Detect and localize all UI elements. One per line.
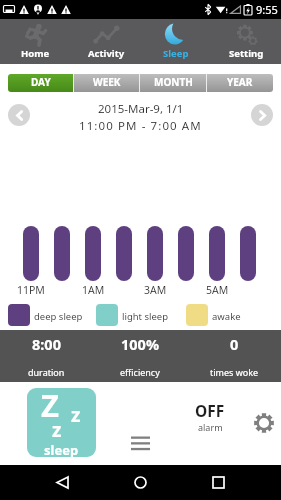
button[interactable]: Previous day <box>8 104 30 126</box>
button[interactable]: Menu <box>131 434 153 450</box>
staticText: YEAR <box>227 75 253 89</box>
staticText: awake <box>212 310 241 323</box>
staticText: 0 <box>230 334 239 354</box>
button[interactable]: Home <box>126 465 154 500</box>
staticText: 5AM <box>206 283 229 297</box>
button[interactable]: Home <box>0 19 71 64</box>
staticText: 1AM <box>82 283 105 297</box>
staticText: z <box>71 402 81 428</box>
button[interactable]: Sleep <box>141 19 211 64</box>
staticText: Setting <box>229 47 264 60</box>
button[interactable]: 0 <box>187 330 281 382</box>
button[interactable]: Recents <box>204 465 232 500</box>
staticText: OFF <box>195 400 225 421</box>
button[interactable]: MONTH <box>140 74 206 92</box>
button[interactable]: DAY <box>8 74 73 92</box>
staticText: z <box>52 417 62 443</box>
button[interactable]: Activity <box>71 19 141 64</box>
button[interactable]: WEEK <box>74 74 139 92</box>
staticText: 3AM <box>144 283 167 297</box>
staticText: MONTH <box>154 75 193 89</box>
button[interactable]: Next day <box>251 104 273 126</box>
staticText: WEEK <box>93 75 121 89</box>
staticText: 11:00 PM - 7:00 AM <box>79 118 202 134</box>
button[interactable]: Back <box>48 465 76 500</box>
button[interactable]: YEAR <box>207 74 273 92</box>
staticText: 100% <box>121 334 159 354</box>
staticText: times woke <box>210 366 259 378</box>
staticText: efficiency <box>120 366 160 378</box>
staticText: deep sleep <box>34 310 83 323</box>
button[interactable]: 8:00 <box>0 330 93 382</box>
staticText: sleep <box>44 441 79 457</box>
staticText: 11PM <box>17 283 45 297</box>
staticText: alarm <box>198 421 223 433</box>
button[interactable]: Setting <box>211 19 281 64</box>
button[interactable]: Alarm settings <box>253 412 275 434</box>
staticText: 2015-Mar-9, 1/1 <box>98 101 184 117</box>
button[interactable]: 100% <box>93 330 187 382</box>
staticText: duration <box>28 366 65 378</box>
button[interactable]: Z <box>27 388 96 457</box>
staticText: light sleep <box>122 310 169 323</box>
staticText: 8:00 <box>32 334 61 354</box>
staticText: Sleep <box>163 47 189 60</box>
staticText: Home <box>21 47 50 60</box>
staticText: DAY <box>31 75 51 89</box>
button[interactable]: OFF <box>178 400 242 434</box>
staticText: 9:55 <box>256 2 278 17</box>
staticText: Z <box>41 388 59 426</box>
staticText: Activity <box>88 47 125 60</box>
